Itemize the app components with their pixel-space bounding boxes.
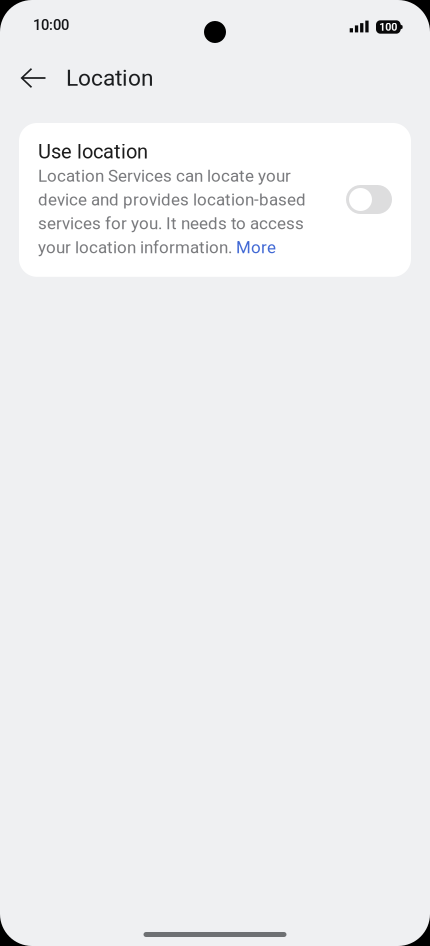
staticText: Use location <box>38 140 148 163</box>
staticText: 100 <box>379 21 397 33</box>
button[interactable]: Use location <box>346 140 392 214</box>
staticText: Location <box>66 65 154 91</box>
staticText: Location Services can locate your device… <box>38 166 306 257</box>
button[interactable]: Back <box>10 55 56 101</box>
staticText: 10:00 <box>33 16 69 34</box>
